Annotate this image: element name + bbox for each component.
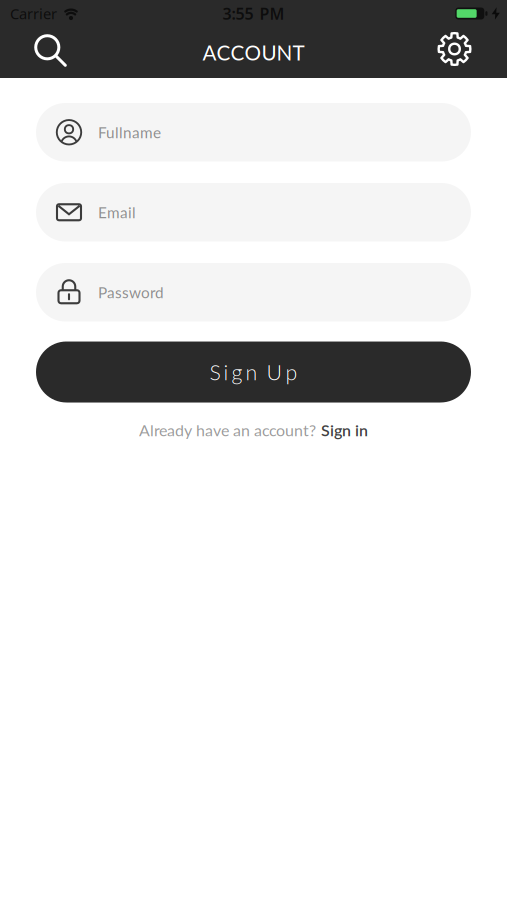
staticText: Sign in bbox=[321, 420, 368, 440]
button[interactable]: Fullname bbox=[36, 103, 471, 161]
staticText: Already have an account? bbox=[139, 420, 316, 440]
staticText: 3:55 PM bbox=[222, 3, 284, 24]
button[interactable]: Email bbox=[36, 183, 471, 241]
button[interactable]: Search bbox=[0, 35, 67, 69]
staticText: Email bbox=[98, 203, 136, 221]
button[interactable]: Sign in bbox=[321, 420, 368, 440]
button[interactable]: Settings bbox=[438, 36, 507, 69]
staticText: S i g n U p bbox=[209, 359, 297, 385]
staticText: Password bbox=[98, 283, 164, 301]
staticText: Carrier bbox=[10, 4, 57, 23]
button[interactable]: S i g n U p bbox=[36, 341, 471, 402]
button[interactable]: Password bbox=[36, 263, 471, 321]
staticText: Fullname bbox=[98, 123, 161, 141]
staticText: ACCOUNT bbox=[202, 40, 304, 65]
